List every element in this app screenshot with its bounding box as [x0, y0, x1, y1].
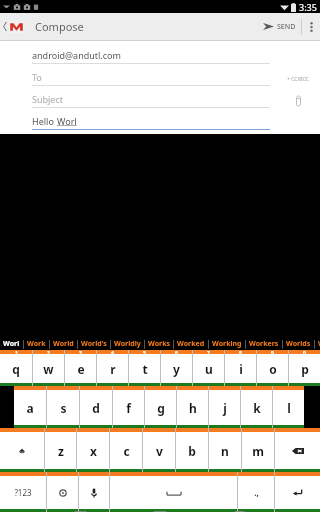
button[interactable]: 9	[257, 350, 288, 386]
button[interactable]: b	[176, 428, 208, 472]
button[interactable]: 4	[97, 350, 128, 386]
button[interactable]: s	[47, 386, 79, 428]
button[interactable]: d	[80, 386, 112, 428]
button[interactable]: v	[143, 428, 175, 472]
staticText: Work	[27, 339, 46, 349]
button[interactable]: k	[241, 386, 272, 428]
button[interactable]: android@andutl.com	[0, 46, 320, 68]
button[interactable]: 3	[65, 350, 96, 386]
button[interactable]: Voice input	[79, 472, 109, 512]
button[interactable]: Workers	[246, 338, 282, 350]
button[interactable]: Back	[0, 13, 27, 40]
staticText: a	[26, 400, 34, 416]
button[interactable]: World	[50, 338, 77, 350]
staticText: Worl	[57, 115, 77, 127]
staticText: Compose	[35, 19, 84, 34]
button[interactable]: h	[177, 386, 208, 428]
button[interactable]: c	[110, 428, 142, 472]
staticText: SEND	[277, 22, 296, 32]
button[interactable]: 6	[161, 350, 192, 386]
staticText: n	[221, 443, 229, 459]
staticText: Worked	[177, 339, 205, 349]
staticText: w	[43, 361, 54, 377]
button[interactable]: To	[0, 68, 320, 90]
button[interactable]: More options	[302, 13, 320, 40]
button[interactable]: Shift	[0, 428, 44, 472]
staticText: f	[126, 400, 131, 416]
button[interactable]: f	[113, 386, 144, 428]
staticText: Workers	[249, 339, 279, 349]
button[interactable]: a	[14, 386, 46, 428]
button[interactable]: l	[273, 386, 304, 428]
button[interactable]: Worldly	[111, 338, 144, 350]
button[interactable]: Worl	[0, 338, 23, 350]
staticText: 5	[143, 350, 146, 354]
staticText: Subject	[32, 93, 64, 105]
button[interactable]: SEND	[258, 13, 301, 40]
staticText: 8	[239, 350, 242, 354]
button[interactable]: Works	[145, 338, 173, 350]
staticText: x	[90, 443, 97, 459]
button[interactable]: ?123	[0, 472, 46, 512]
staticText: android@andutl.com	[32, 49, 121, 61]
staticText: u	[205, 361, 213, 377]
staticText: World	[53, 339, 74, 349]
staticText: j	[223, 400, 227, 416]
staticText: Worlds	[286, 339, 311, 349]
staticText: 3	[79, 350, 82, 354]
staticText: d	[92, 400, 100, 416]
staticText: 6	[175, 350, 178, 354]
button[interactable]: Worm	[315, 338, 320, 350]
button[interactable]: Backspace	[275, 428, 320, 472]
staticText: 1	[15, 350, 18, 354]
button[interactable]: Hello	[0, 112, 320, 134]
staticText: z	[58, 443, 64, 459]
button[interactable]: 0	[289, 350, 320, 386]
staticText: l	[287, 400, 291, 416]
button[interactable]: 7	[193, 350, 224, 386]
staticText: c	[123, 443, 130, 459]
staticText: q	[12, 361, 20, 377]
staticText: r	[110, 361, 116, 377]
button[interactable]: 2	[33, 350, 64, 386]
button[interactable]: m	[242, 428, 274, 472]
button[interactable]: 1	[0, 350, 32, 386]
button[interactable]: z	[45, 428, 76, 472]
button[interactable]: .,	[238, 472, 274, 512]
staticText: Worl	[3, 339, 20, 349]
button[interactable]: x	[77, 428, 109, 472]
staticText: v	[156, 443, 163, 459]
button[interactable]: Worked	[174, 338, 208, 350]
staticText: g	[157, 400, 165, 416]
staticText: 2	[47, 350, 50, 354]
button[interactable]: World's	[78, 338, 110, 350]
staticText: h	[189, 400, 197, 416]
button[interactable]: Work	[24, 338, 49, 350]
button[interactable]: 8	[225, 350, 256, 386]
staticText: 7	[207, 350, 210, 354]
staticText: s	[60, 400, 67, 416]
staticText: + CC/BCC	[287, 76, 309, 83]
staticText: t	[142, 361, 148, 377]
staticText: ?123	[14, 487, 32, 498]
staticText: 4	[111, 350, 114, 354]
button[interactable]: 5	[129, 350, 160, 386]
staticText: e	[77, 361, 85, 377]
staticText: To	[32, 71, 42, 83]
button[interactable]: Subject	[0, 90, 320, 112]
button[interactable]: + CC/BCC	[285, 72, 311, 87]
staticText: World's	[81, 339, 107, 349]
button[interactable]: j	[209, 386, 240, 428]
button[interactable]: n	[209, 428, 241, 472]
staticText: b	[188, 443, 196, 459]
staticText: p	[301, 361, 309, 377]
button[interactable]: Attach file	[292, 93, 305, 109]
button[interactable]: Emoji	[47, 472, 78, 512]
button[interactable]: Enter	[275, 472, 320, 512]
button[interactable]: g	[145, 386, 176, 428]
staticText: 9	[271, 350, 274, 354]
button[interactable]: Space	[110, 472, 237, 512]
button[interactable]: Worlds	[283, 338, 314, 350]
button[interactable]: Working	[209, 338, 245, 350]
staticText: 3:35	[299, 1, 317, 13]
